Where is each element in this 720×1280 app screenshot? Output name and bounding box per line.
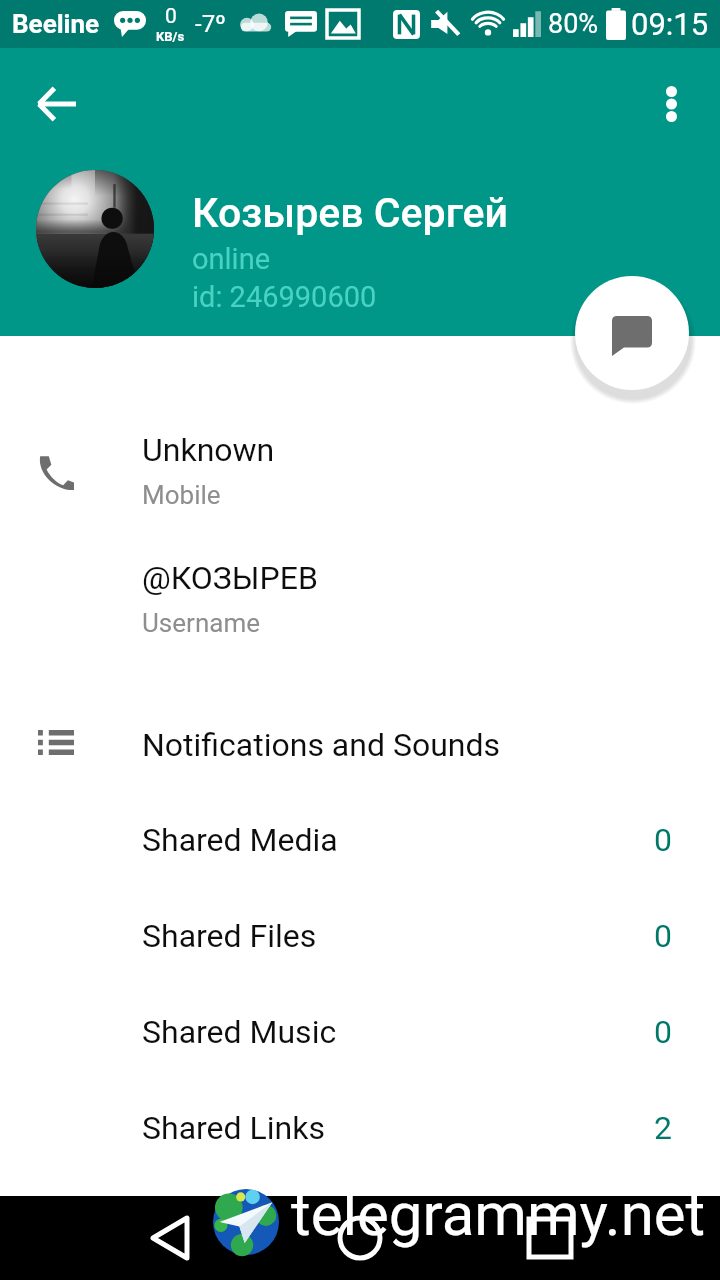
staticText: id: 246990600 (192, 280, 377, 314)
button[interactable]: @КОЗЫРЕВ (0, 532, 720, 660)
button[interactable]: Notifications and Sounds (0, 697, 720, 793)
staticText: Unknown (142, 431, 275, 469)
staticText: 80% (548, 8, 599, 40)
staticText: 0 (654, 917, 672, 955)
staticText: 0 (654, 821, 672, 859)
button[interactable]: Shared Media (0, 792, 720, 888)
button[interactable]: Unknown (0, 404, 720, 532)
staticText: 0 (165, 4, 177, 29)
staticText: telegrammy.net (291, 1179, 706, 1249)
staticText: Shared Files (142, 917, 317, 955)
button[interactable]: Recent apps (502, 1196, 598, 1280)
staticText: Beeline (12, 9, 100, 39)
staticText: @КОЗЫРЕВ (142, 559, 318, 597)
staticText: KB/s (156, 29, 185, 44)
button[interactable]: Send message (575, 276, 689, 390)
staticText: Username (142, 608, 260, 638)
staticText: online (192, 242, 271, 276)
button[interactable]: Home (312, 1196, 408, 1280)
button[interactable]: Back (20, 68, 92, 140)
staticText: Козырев Сергей (192, 189, 509, 237)
staticText: 09:15 (631, 6, 709, 42)
staticText: Notifications and Sounds (142, 726, 501, 764)
button[interactable]: Back (120, 1196, 220, 1280)
staticText: Shared Links (142, 1109, 325, 1147)
button[interactable]: Shared Music (0, 984, 720, 1080)
button[interactable]: Shared Files (0, 888, 720, 984)
staticText: Shared Media (142, 821, 338, 859)
staticText: 2 (654, 1109, 672, 1147)
staticText: Mobile (142, 480, 221, 510)
button[interactable]: Shared Links (0, 1080, 720, 1176)
staticText: -7º (195, 10, 227, 38)
staticText: Shared Music (142, 1013, 337, 1051)
button[interactable]: More options (635, 68, 707, 140)
staticText: 0 (654, 1013, 672, 1051)
